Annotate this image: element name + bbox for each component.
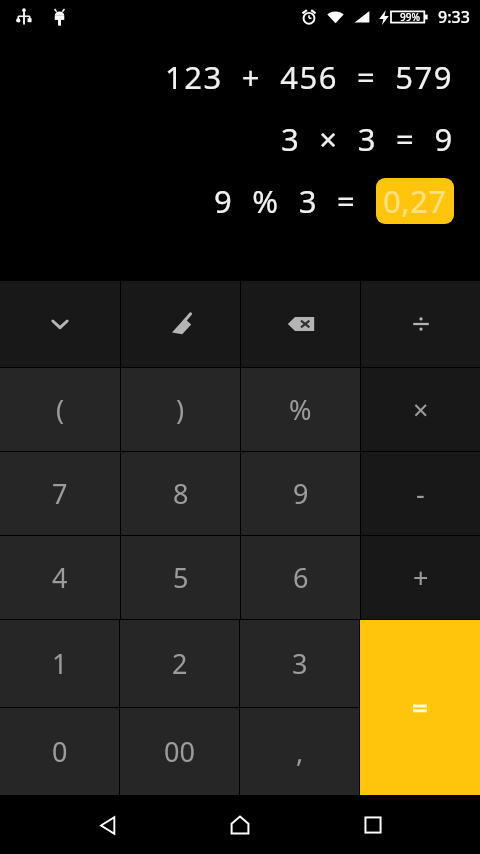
button[interactable]: 2 [120,620,239,707]
staticText: 00 [164,733,195,770]
staticText: × [413,391,429,428]
staticText: - [416,475,425,512]
staticText: 9:33 [438,6,470,28]
button[interactable]: 5 [121,536,240,619]
staticText: 9 [293,475,309,512]
button[interactable]: 7 [0,452,120,535]
button[interactable]: Home [214,799,266,851]
staticText: 123 + 456 = 579 [165,56,454,98]
button[interactable]: 6 [241,536,360,619]
staticText: 99% [400,10,420,24]
staticText: 3 × 3 = 9 [281,118,454,160]
button[interactable]: 1 [0,620,119,707]
staticText: 7 [52,475,68,512]
staticText: 2 [172,645,188,682]
button[interactable]: 8 [121,452,240,535]
button[interactable]: 3 [240,620,359,707]
button[interactable]: Equals [360,620,480,795]
button[interactable]: ( [0,368,120,451]
button[interactable]: 0 [0,708,119,795]
button[interactable]: Divide [361,281,480,367]
staticText: 1 [52,645,68,682]
button[interactable]: % [241,368,360,451]
staticText: ( [56,391,65,428]
button[interactable]: , [240,708,359,795]
staticText: , [296,733,304,770]
staticText: 4 [52,559,68,596]
button[interactable]: 0,27 [376,178,454,224]
staticText: 0 [52,733,68,770]
staticText: 0,27 [383,180,447,222]
button[interactable]: Clear all [121,281,240,367]
staticText: 9 % 3 = [214,180,376,222]
button[interactable]: 00 [120,708,239,795]
staticText: ) [176,391,185,428]
staticText: % [289,391,312,428]
button[interactable]: Recents [347,799,399,851]
button[interactable]: 9 [241,452,360,535]
button[interactable]: 4 [0,536,120,619]
staticText: 6 [293,559,309,596]
button[interactable]: - [361,452,480,535]
staticText: 3 [292,645,308,682]
button[interactable]: × [361,368,480,451]
button[interactable]: + [361,536,480,619]
staticText: 8 [173,475,189,512]
button[interactable]: Collapse [0,281,120,367]
staticText: 5 [173,559,189,596]
staticText: + [413,559,429,596]
button[interactable]: ) [121,368,240,451]
button[interactable]: Backspace [241,281,360,367]
button[interactable]: Back [81,799,133,851]
